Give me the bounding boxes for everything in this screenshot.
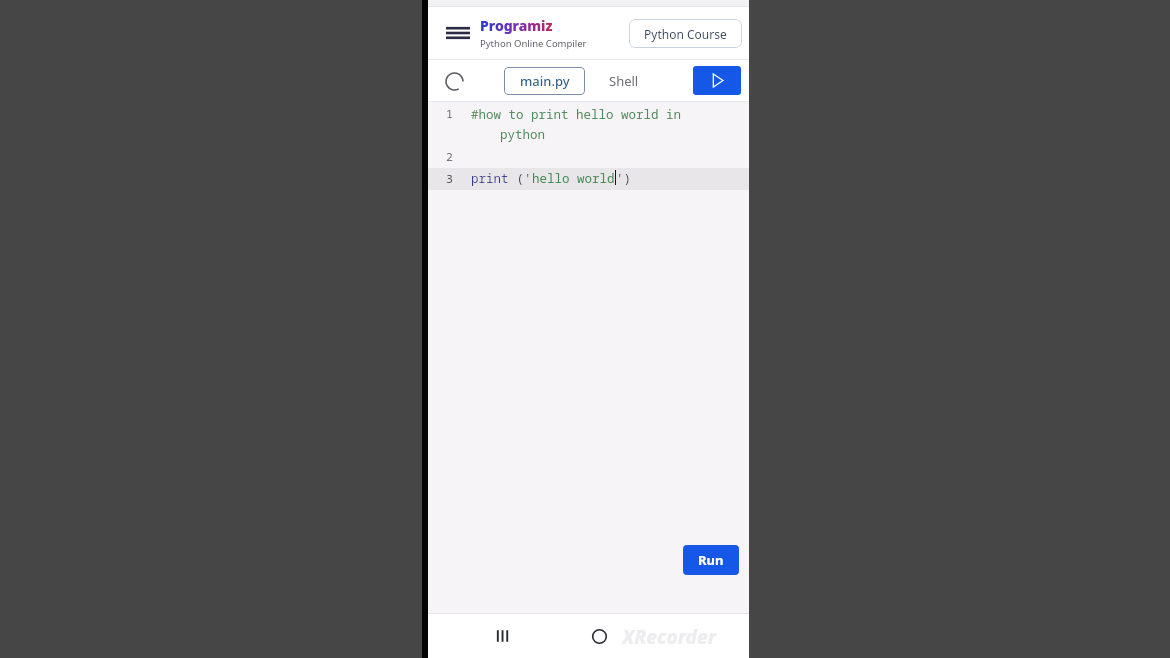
staticText: Shell	[609, 72, 639, 90]
staticText: 2	[446, 149, 453, 165]
staticText: 3	[446, 171, 453, 187]
staticText: ('	[509, 170, 532, 187]
button[interactable]: Run code	[693, 66, 741, 95]
staticText: print	[471, 170, 509, 187]
button[interactable]: Home	[581, 618, 617, 654]
staticText: XRecorder	[622, 624, 716, 650]
button[interactable]: Python Course	[629, 19, 742, 48]
staticText: Python Course	[644, 26, 727, 42]
staticText: #how to print hello world in	[471, 106, 682, 123]
button[interactable]: Run	[683, 545, 739, 575]
staticText: python	[500, 126, 546, 143]
staticText: 1	[446, 106, 453, 122]
staticText: main.py	[520, 72, 570, 90]
button[interactable]: Recent apps	[485, 619, 519, 653]
button[interactable]: Shell	[585, 67, 662, 95]
button[interactable]: 3	[428, 168, 749, 190]
staticText: Python Online Compiler	[480, 37, 587, 50]
button[interactable]: Toggle dark mode	[438, 65, 470, 97]
staticText: hello world	[532, 170, 615, 187]
staticText: Programiz	[480, 16, 553, 35]
button[interactable]: Menu	[440, 15, 476, 51]
button[interactable]: main.py	[504, 67, 585, 95]
staticText: Run	[698, 551, 724, 569]
staticText: ')	[616, 170, 632, 187]
